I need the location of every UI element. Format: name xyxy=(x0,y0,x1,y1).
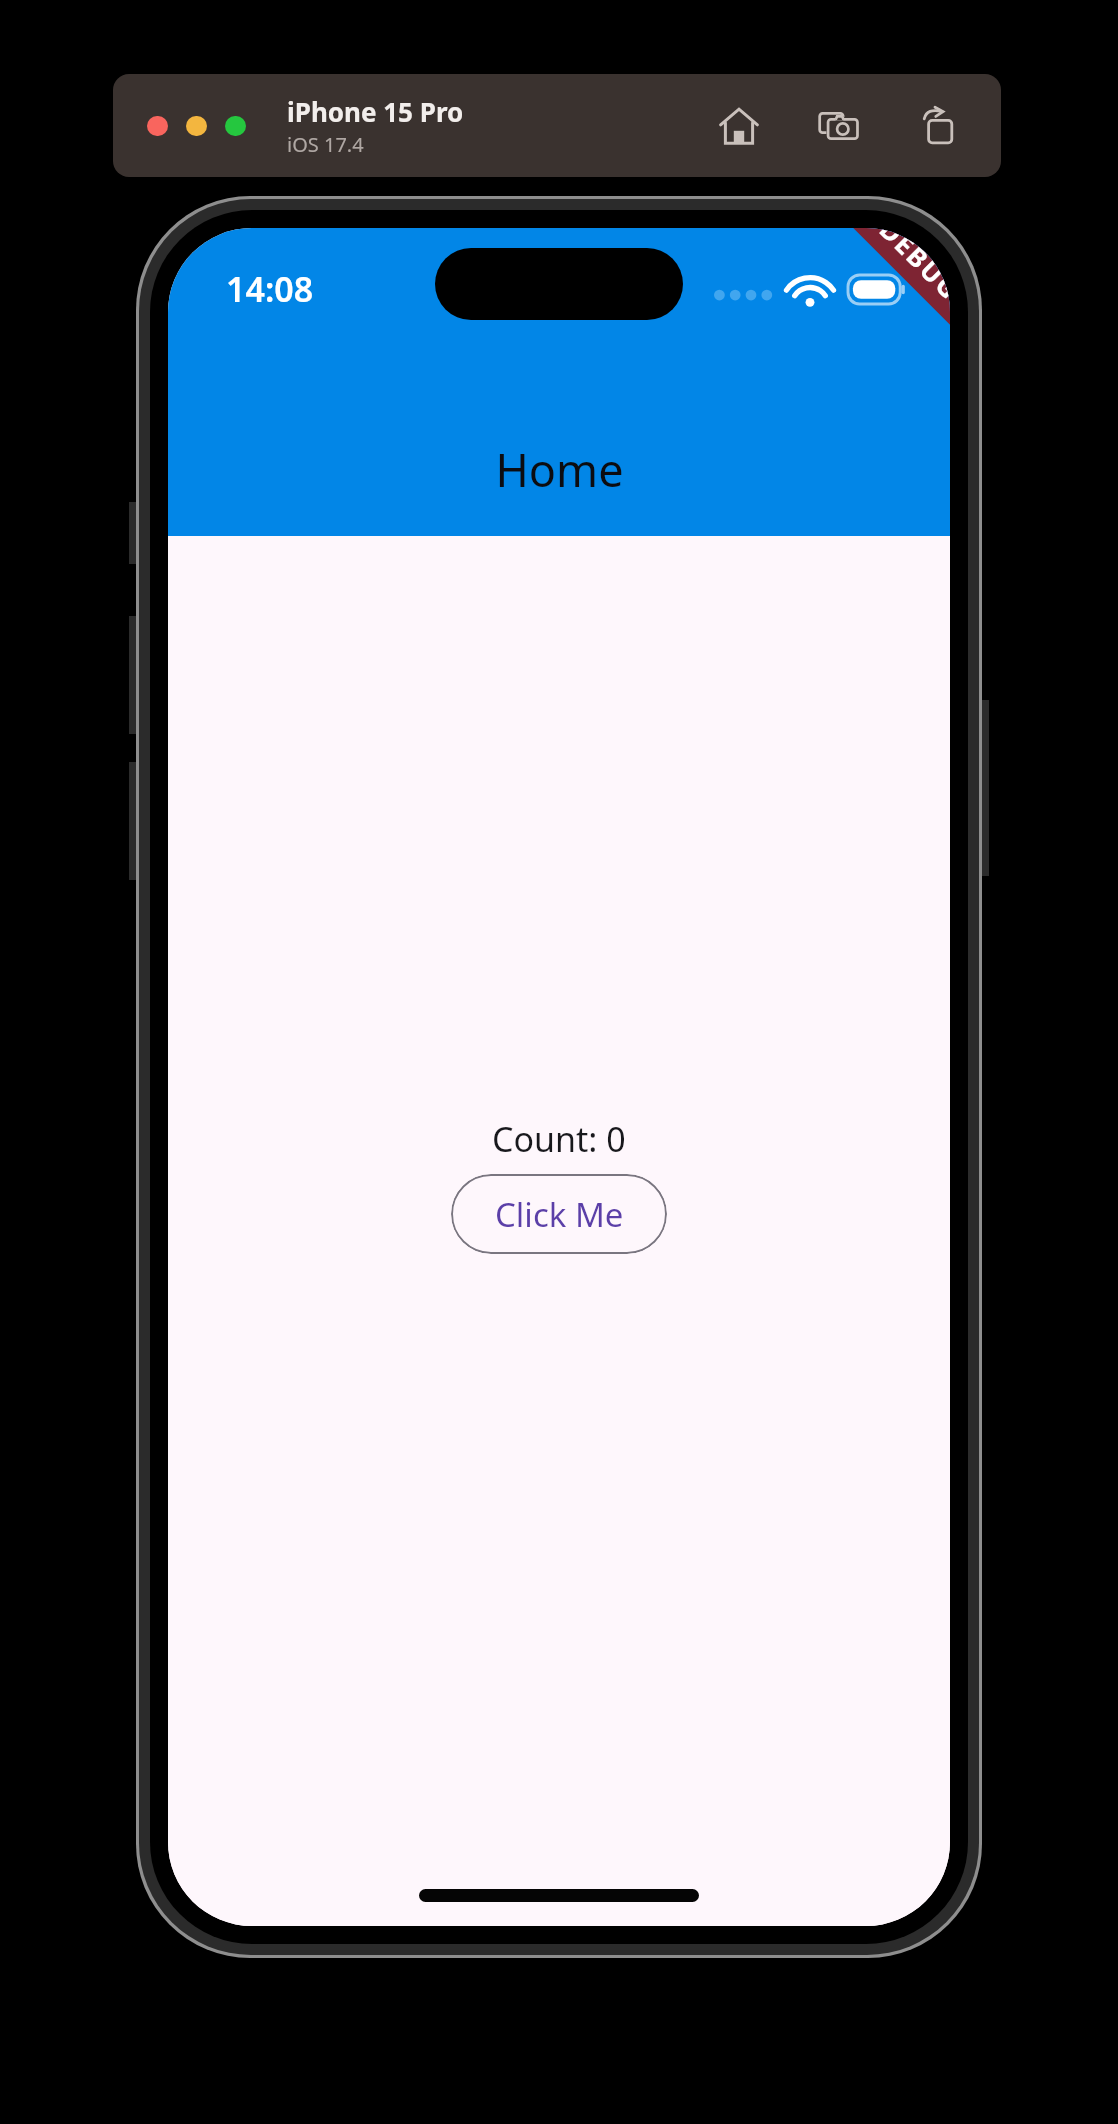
staticText: DEBUG xyxy=(873,228,950,307)
button[interactable] xyxy=(186,116,207,136)
staticText: Click Me xyxy=(495,1192,624,1237)
staticText: Count: 0 xyxy=(492,1116,626,1162)
staticText: 14:08 xyxy=(226,266,314,312)
button[interactable]: Rotate xyxy=(907,94,971,158)
staticText: iOS 17.4 xyxy=(287,131,364,158)
button[interactable]: Home xyxy=(707,94,771,158)
button[interactable] xyxy=(147,116,168,136)
button[interactable] xyxy=(225,116,246,136)
staticText: Home xyxy=(495,439,624,500)
button[interactable]: Screenshot xyxy=(807,94,871,158)
button[interactable]: Click Me xyxy=(451,1174,667,1254)
staticText: iPhone 15 Pro xyxy=(287,94,464,129)
